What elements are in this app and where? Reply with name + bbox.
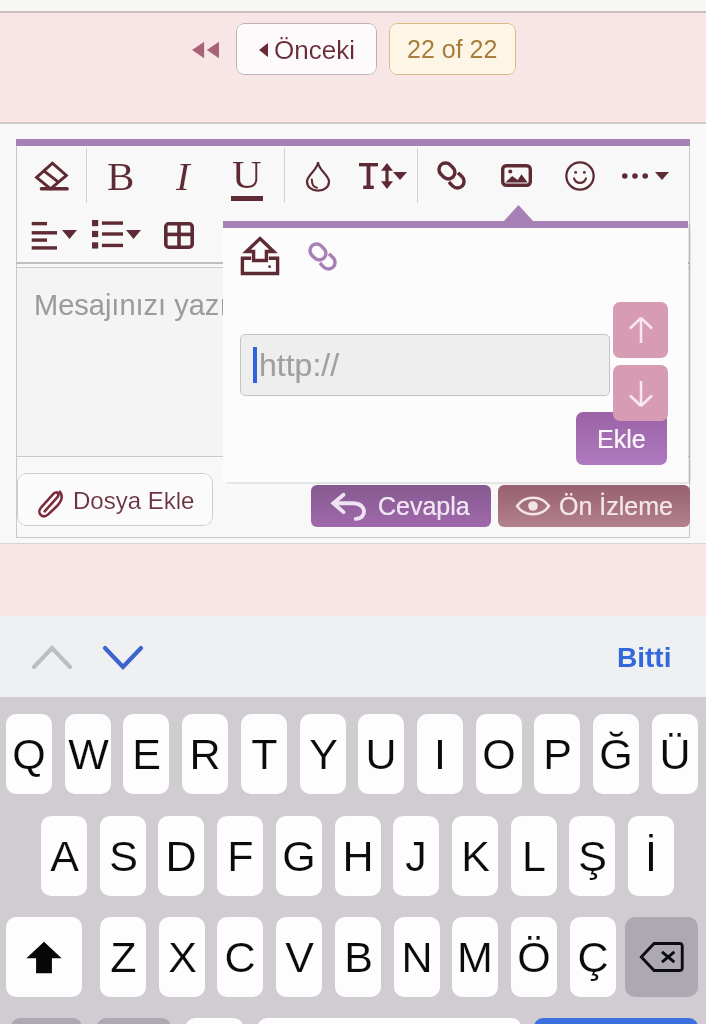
staticText: I: [176, 153, 190, 198]
staticText: İ: [645, 832, 657, 880]
button[interactable]: V: [276, 917, 322, 997]
button[interactable]: I: [417, 714, 463, 794]
staticText: Y: [309, 730, 338, 778]
staticText: L: [522, 832, 546, 880]
button[interactable]: N: [394, 917, 440, 997]
button[interactable]: C: [217, 917, 263, 997]
button[interactable]: Mesajınızı yazın: [16, 267, 690, 457]
button[interactable]: Previous field: [613, 302, 668, 358]
button[interactable]: H: [335, 816, 381, 896]
button[interactable]: Ön İzleme: [498, 485, 690, 527]
staticText: I: [434, 730, 446, 778]
button[interactable]: Clear formatting: [20, 147, 82, 204]
button[interactable]: O: [476, 714, 522, 794]
button[interactable]: Space: [258, 1018, 521, 1024]
staticText: K: [461, 832, 490, 880]
staticText: N: [401, 933, 433, 981]
staticText: Ş: [578, 832, 607, 880]
button[interactable]: Ö: [511, 917, 557, 997]
button[interactable]: Emoji: [97, 1018, 171, 1024]
button[interactable]: Ş: [569, 816, 615, 896]
button[interactable]: http://: [240, 334, 610, 396]
button[interactable]: L: [511, 816, 557, 896]
staticText: O: [482, 730, 516, 778]
staticText: 22 of 22: [407, 35, 498, 63]
button[interactable]: Önceki: [236, 23, 377, 75]
button[interactable]: Insert image: [485, 147, 547, 204]
button[interactable]: R: [182, 714, 228, 794]
button[interactable]: W: [65, 714, 111, 794]
button[interactable]: Font size: [352, 147, 414, 204]
button[interactable]: Emoji: [549, 147, 611, 204]
button[interactable]: A: [41, 816, 87, 896]
button[interactable]: G: [276, 816, 322, 896]
button[interactable]: Ç: [570, 917, 616, 997]
staticText: B: [107, 153, 135, 198]
staticText: Ön İzleme: [559, 492, 673, 520]
staticText: Dosya Ekle: [73, 487, 195, 514]
button[interactable]: Text colour: [287, 147, 349, 204]
button[interactable]: Previous field: [28, 636, 76, 678]
staticText: J: [405, 832, 427, 880]
button[interactable]: Cevapla: [311, 485, 491, 527]
button[interactable]: E: [123, 714, 169, 794]
staticText: F: [227, 832, 254, 880]
button[interactable]: K: [452, 816, 498, 896]
button[interactable]: X: [159, 917, 205, 997]
button[interactable]: Italic: [152, 147, 214, 204]
button[interactable]: Dictation: [186, 1018, 243, 1024]
button[interactable]: T: [241, 714, 287, 794]
staticText: S: [109, 832, 138, 880]
button[interactable]: Y: [300, 714, 346, 794]
staticText: U: [232, 151, 262, 196]
button[interactable]: Table: [156, 211, 206, 257]
button[interactable]: U: [358, 714, 404, 794]
button[interactable]: Lists: [86, 211, 157, 257]
button[interactable]: Insert link: [297, 231, 347, 281]
staticText: E: [132, 730, 161, 778]
button[interactable]: First message: [182, 27, 228, 73]
button[interactable]: Q: [6, 714, 52, 794]
staticText: Ğ: [599, 730, 633, 778]
button[interactable]: Ekle: [576, 412, 667, 465]
staticText: Önceki: [274, 35, 355, 64]
button[interactable]: Insert link: [420, 147, 482, 204]
button[interactable]: 22 of 22: [389, 23, 516, 75]
button[interactable]: More options: [614, 147, 676, 204]
button[interactable]: B: [335, 917, 381, 997]
button[interactable]: F: [217, 816, 263, 896]
staticText: Bitti: [617, 642, 672, 673]
button[interactable]: Underline: [216, 147, 278, 204]
button[interactable]: J: [393, 816, 439, 896]
button[interactable]: M: [452, 917, 498, 997]
staticText: Cevapla: [378, 492, 470, 520]
button[interactable]: Bold: [90, 147, 152, 204]
button[interactable]: Return: [534, 1018, 698, 1024]
button[interactable]: Next field: [99, 636, 147, 678]
button[interactable]: Shift: [6, 917, 82, 997]
button[interactable]: Backspace: [625, 917, 698, 997]
button[interactable]: S: [100, 816, 146, 896]
button[interactable]: Ğ: [593, 714, 639, 794]
button[interactable]: Dosya Ekle: [17, 473, 213, 526]
staticText: X: [168, 933, 197, 981]
staticText: Ç: [577, 933, 609, 981]
staticText: W: [68, 730, 109, 778]
button[interactable]: İ: [628, 816, 674, 896]
button[interactable]: Bitti: [611, 632, 677, 682]
button[interactable]: Z: [100, 917, 146, 997]
button[interactable]: P: [534, 714, 580, 794]
staticText: Ekle: [597, 425, 646, 453]
staticText: R: [189, 730, 221, 778]
staticText: Z: [110, 933, 137, 981]
button[interactable]: Numbers: [11, 1018, 82, 1024]
staticText: Ö: [517, 933, 551, 981]
staticText: Ü: [659, 730, 691, 778]
staticText: http://: [259, 347, 340, 383]
button[interactable]: Next field: [613, 365, 668, 421]
staticText: B: [344, 933, 373, 981]
button[interactable]: Alignment: [22, 211, 92, 257]
button[interactable]: Ü: [652, 714, 698, 794]
button[interactable]: D: [158, 816, 204, 896]
button[interactable]: Upload file: [235, 231, 285, 281]
